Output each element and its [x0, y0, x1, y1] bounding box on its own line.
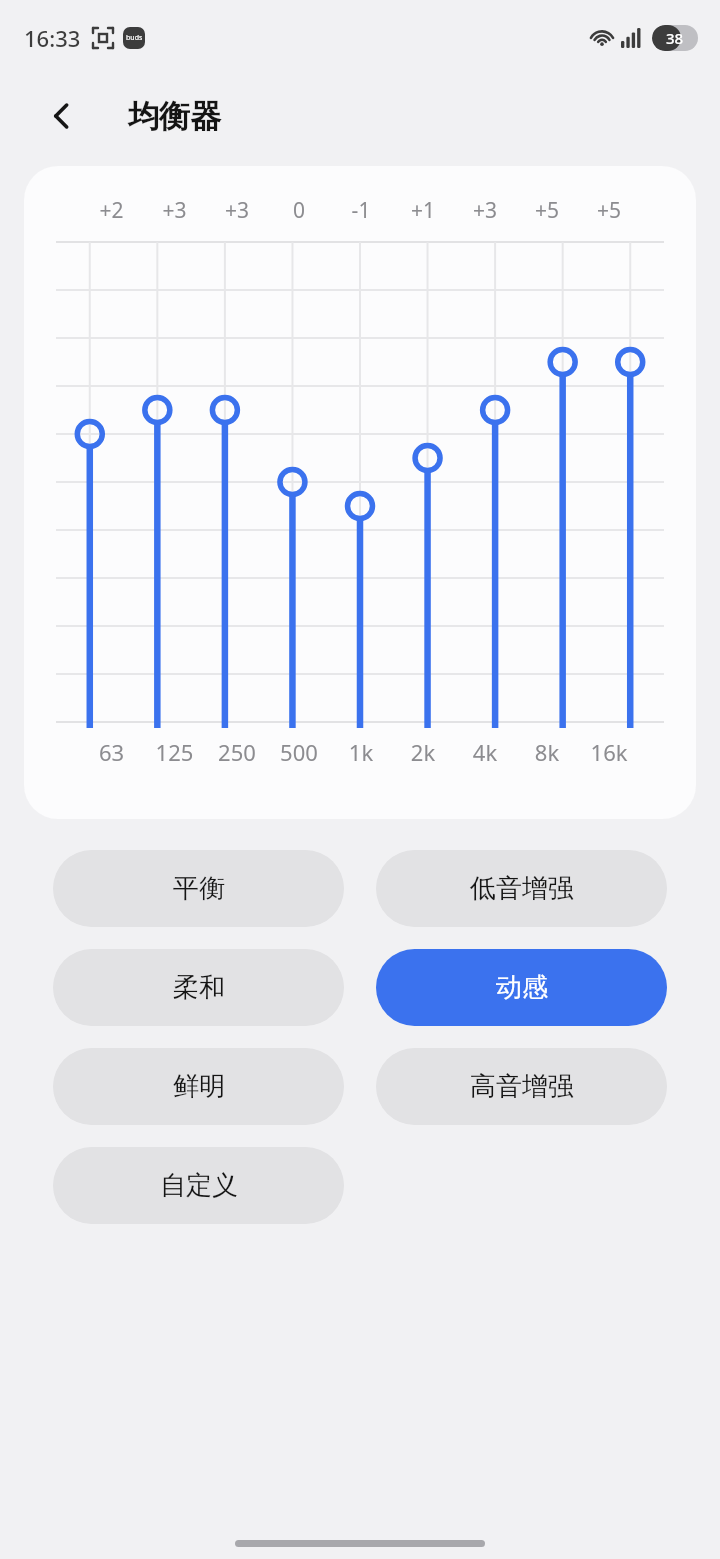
- staticText: +5: [578, 196, 640, 225]
- button[interactable]: 高音增强: [376, 1048, 667, 1125]
- staticText: 8k: [516, 737, 578, 767]
- button[interactable]: 平衡: [53, 850, 344, 927]
- button[interactable]: Back: [36, 90, 88, 142]
- staticText: 平衡: [173, 872, 225, 905]
- staticText: 高音增强: [470, 1070, 574, 1103]
- staticText: buds: [126, 33, 143, 43]
- staticText: +3: [454, 196, 516, 225]
- staticText: 38: [666, 28, 684, 48]
- staticText: 63: [80, 737, 143, 767]
- staticText: +1: [392, 196, 454, 225]
- staticText: 0: [268, 196, 330, 225]
- staticText: +3: [143, 196, 206, 225]
- staticText: 自定义: [160, 1169, 238, 1202]
- staticText: -1: [330, 196, 392, 225]
- staticText: 鲜明: [173, 1070, 225, 1103]
- staticText: 2k: [392, 737, 454, 767]
- staticText: 1k: [330, 737, 392, 767]
- staticText: 动感: [496, 971, 548, 1004]
- staticText: 柔和: [173, 971, 225, 1004]
- staticText: 16:33: [24, 23, 81, 53]
- staticText: +3: [206, 196, 268, 225]
- staticText: 500: [268, 737, 330, 767]
- button[interactable]: 自定义: [53, 1147, 344, 1224]
- staticText: 低音增强: [470, 872, 574, 905]
- staticText: 均衡器: [128, 97, 221, 136]
- button[interactable]: 低音增强: [376, 850, 667, 927]
- button[interactable]: 鲜明: [53, 1048, 344, 1125]
- staticText: 16k: [578, 737, 640, 767]
- staticText: +5: [516, 196, 578, 225]
- staticText: 125: [143, 737, 206, 767]
- button[interactable]: 动感: [376, 949, 667, 1026]
- staticText: 4k: [454, 737, 516, 767]
- button[interactable]: 柔和: [53, 949, 344, 1026]
- staticText: 250: [206, 737, 268, 767]
- staticText: +2: [80, 196, 143, 225]
